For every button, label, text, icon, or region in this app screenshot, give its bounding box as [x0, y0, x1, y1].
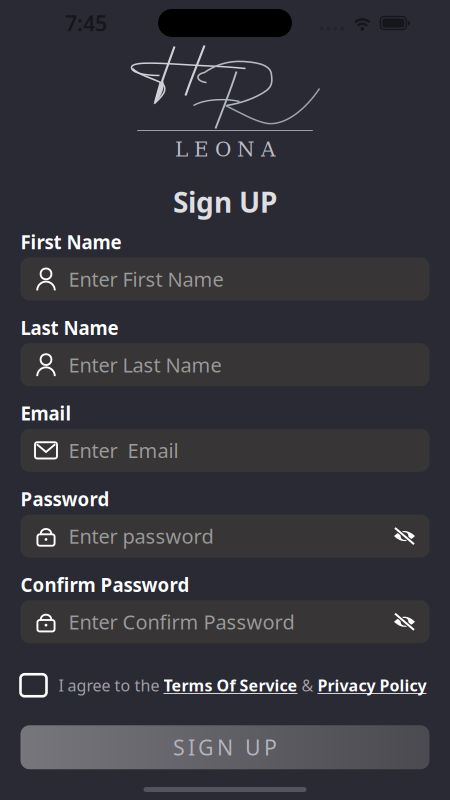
button[interactable]: I agree to the — [20, 672, 429, 698]
staticText: Sign UP — [173, 183, 277, 220]
button[interactable]: Enter Email — [20, 429, 429, 472]
staticText: 7:45 — [65, 9, 107, 37]
button[interactable]: Enter Last Name — [20, 343, 429, 386]
staticText: I agree to the — [58, 675, 163, 696]
staticText: Email — [20, 401, 71, 426]
staticText: Enter Confirm Password — [68, 608, 294, 635]
staticText: L E O N A — [175, 138, 275, 161]
button[interactable]: Enter First Name — [20, 257, 429, 300]
button[interactable]: Enter Confirm Password — [20, 600, 429, 643]
button[interactable]: SIGN UP — [20, 725, 429, 769]
staticText: First Name — [20, 230, 121, 254]
staticText: Privacy Policy — [317, 675, 426, 696]
staticText: Last Name — [20, 315, 118, 340]
staticText: Enter Email — [68, 437, 178, 464]
staticText: & — [297, 675, 317, 696]
staticText: Password — [20, 487, 109, 511]
button[interactable]: Enter password — [20, 515, 429, 558]
staticText: SIGN UP — [173, 733, 277, 761]
staticText: Enter password — [68, 523, 213, 549]
staticText: Confirm Password — [20, 572, 189, 597]
staticText: Enter First Name — [68, 266, 223, 292]
staticText: Enter Last Name — [68, 351, 221, 378]
staticText: Terms Of Service — [163, 675, 297, 696]
